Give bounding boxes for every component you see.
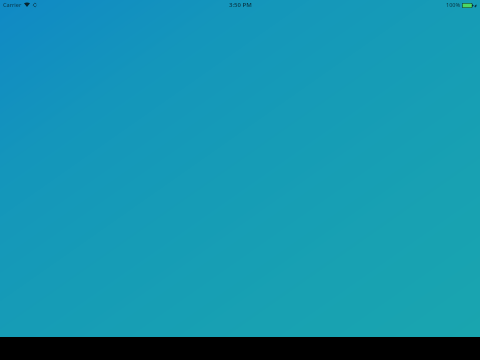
other: Battery full [462, 3, 474, 8]
button[interactable]: Carrier [0, 0, 480, 12]
staticText: 100% [446, 1, 461, 8]
other: Charging [474, 4, 477, 8]
staticText: Carrier [3, 1, 22, 8]
other: Network activity [33, 3, 37, 7]
staticText: 3:50 PM [229, 1, 252, 9]
other: Wi-Fi signal [24, 2, 30, 7]
